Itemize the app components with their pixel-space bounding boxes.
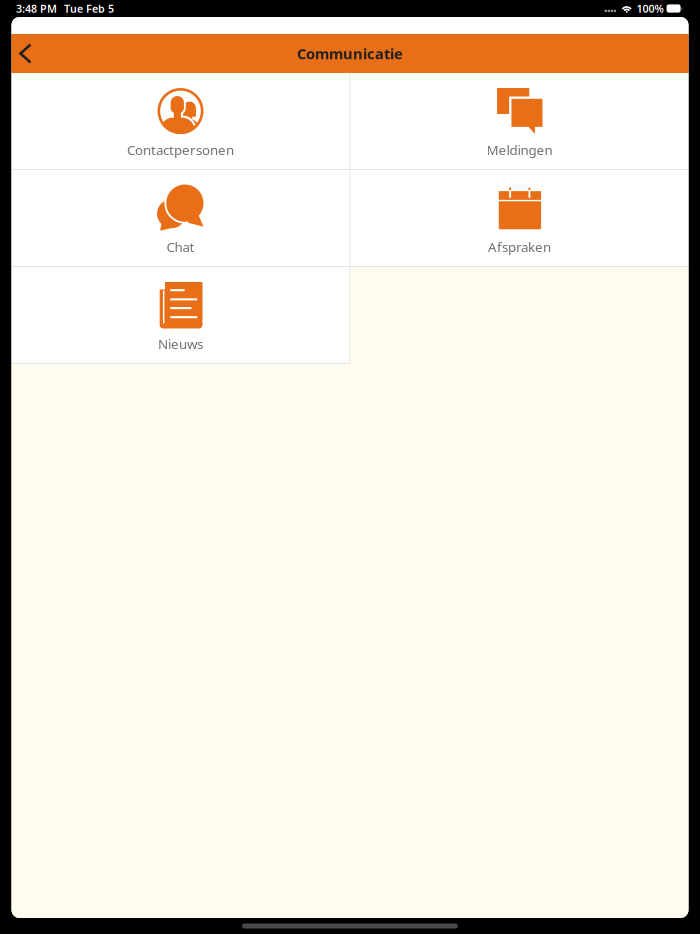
staticText: Meldingen bbox=[486, 141, 552, 159]
staticText: Nieuws bbox=[158, 335, 203, 353]
button[interactable]: Back bbox=[11, 34, 47, 73]
button[interactable]: Meldingen bbox=[350, 73, 688, 169]
button[interactable]: Chat bbox=[11, 170, 349, 266]
staticText: 100% bbox=[637, 1, 664, 16]
button[interactable]: Nieuws bbox=[11, 267, 349, 363]
staticText: Contactpersonen bbox=[127, 141, 234, 159]
staticText: Tue Feb 5 bbox=[64, 1, 114, 16]
staticText: 3:48 PM bbox=[16, 1, 57, 16]
staticText: Chat bbox=[166, 238, 194, 256]
staticText: Afspraken bbox=[488, 238, 551, 256]
button[interactable]: Contactpersonen bbox=[11, 73, 349, 169]
button[interactable]: Afspraken bbox=[350, 170, 688, 266]
staticText: Communicatie bbox=[297, 44, 403, 63]
